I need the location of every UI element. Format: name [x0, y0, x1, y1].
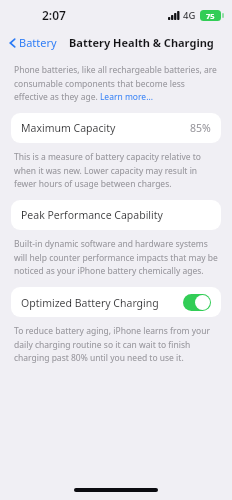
- button[interactable]: Maximum Capacity: [11, 113, 221, 143]
- button[interactable]: Optimized Battery Charging, on: [183, 294, 211, 311]
- staticText: Maximum Capacity: [21, 121, 116, 135]
- staticText: 2:07: [42, 7, 66, 23]
- staticText: Battery Health & Charging: [69, 35, 214, 50]
- staticText: 75: [206, 11, 215, 21]
- button[interactable]: Peak Performance Capability: [11, 200, 221, 230]
- staticText: 85%: [190, 121, 211, 135]
- staticText: This is a measure of battery capacity re…: [14, 151, 218, 189]
- staticText: To reduce battery aging, iPhone learns f…: [14, 325, 218, 363]
- staticText: Optimized Battery Charging: [21, 296, 159, 310]
- staticText: Peak Performance Capability: [21, 208, 163, 222]
- staticText: Built-in dynamic software and hardware s…: [14, 238, 218, 276]
- button[interactable]: Battery: [7, 32, 59, 53]
- staticText: Phone batteries, like all rechargeable b…: [14, 64, 218, 102]
- button[interactable]: Optimized Battery Charging: [11, 287, 221, 317]
- staticText: 4G: [183, 9, 196, 22]
- staticText: Battery: [19, 35, 57, 50]
